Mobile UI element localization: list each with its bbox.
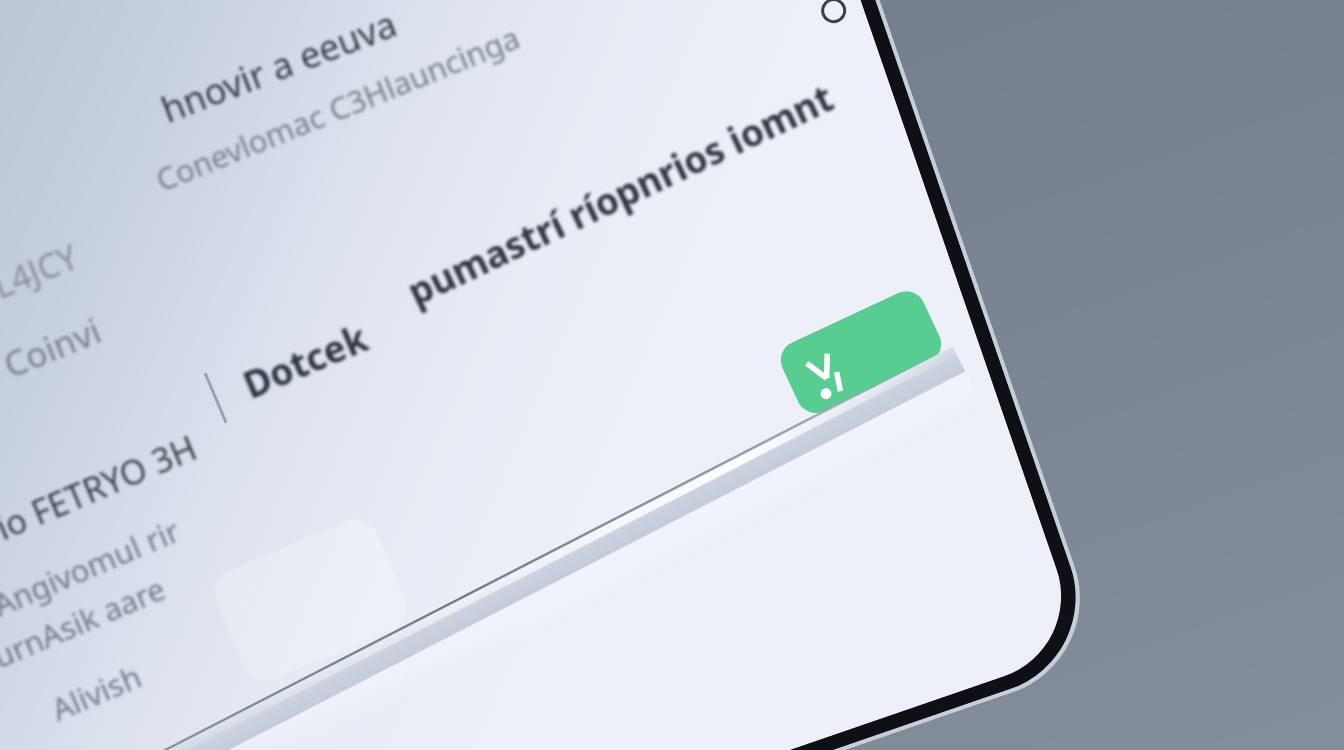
staticText: NL4JCY	[0, 232, 87, 319]
staticText: Coinvi	[0, 306, 110, 390]
button[interactable]	[203, 509, 418, 691]
staticText: hnovir a eeuva	[151, 0, 407, 134]
staticText: Alivish	[43, 654, 150, 731]
button[interactable]: Info	[817, 0, 850, 27]
staticText: Conevlomac C3Hlauncinga	[143, 15, 532, 201]
staticText: Angivomul rir	[0, 508, 191, 626]
staticText: pumastrí ríopnrios iomnt	[382, 70, 857, 317]
staticText: urnAsik aare	[0, 566, 176, 678]
button[interactable]: Record	[769, 282, 953, 422]
staticText: Dotcek	[232, 310, 378, 410]
staticText: io FETRYO 3H	[0, 423, 209, 551]
